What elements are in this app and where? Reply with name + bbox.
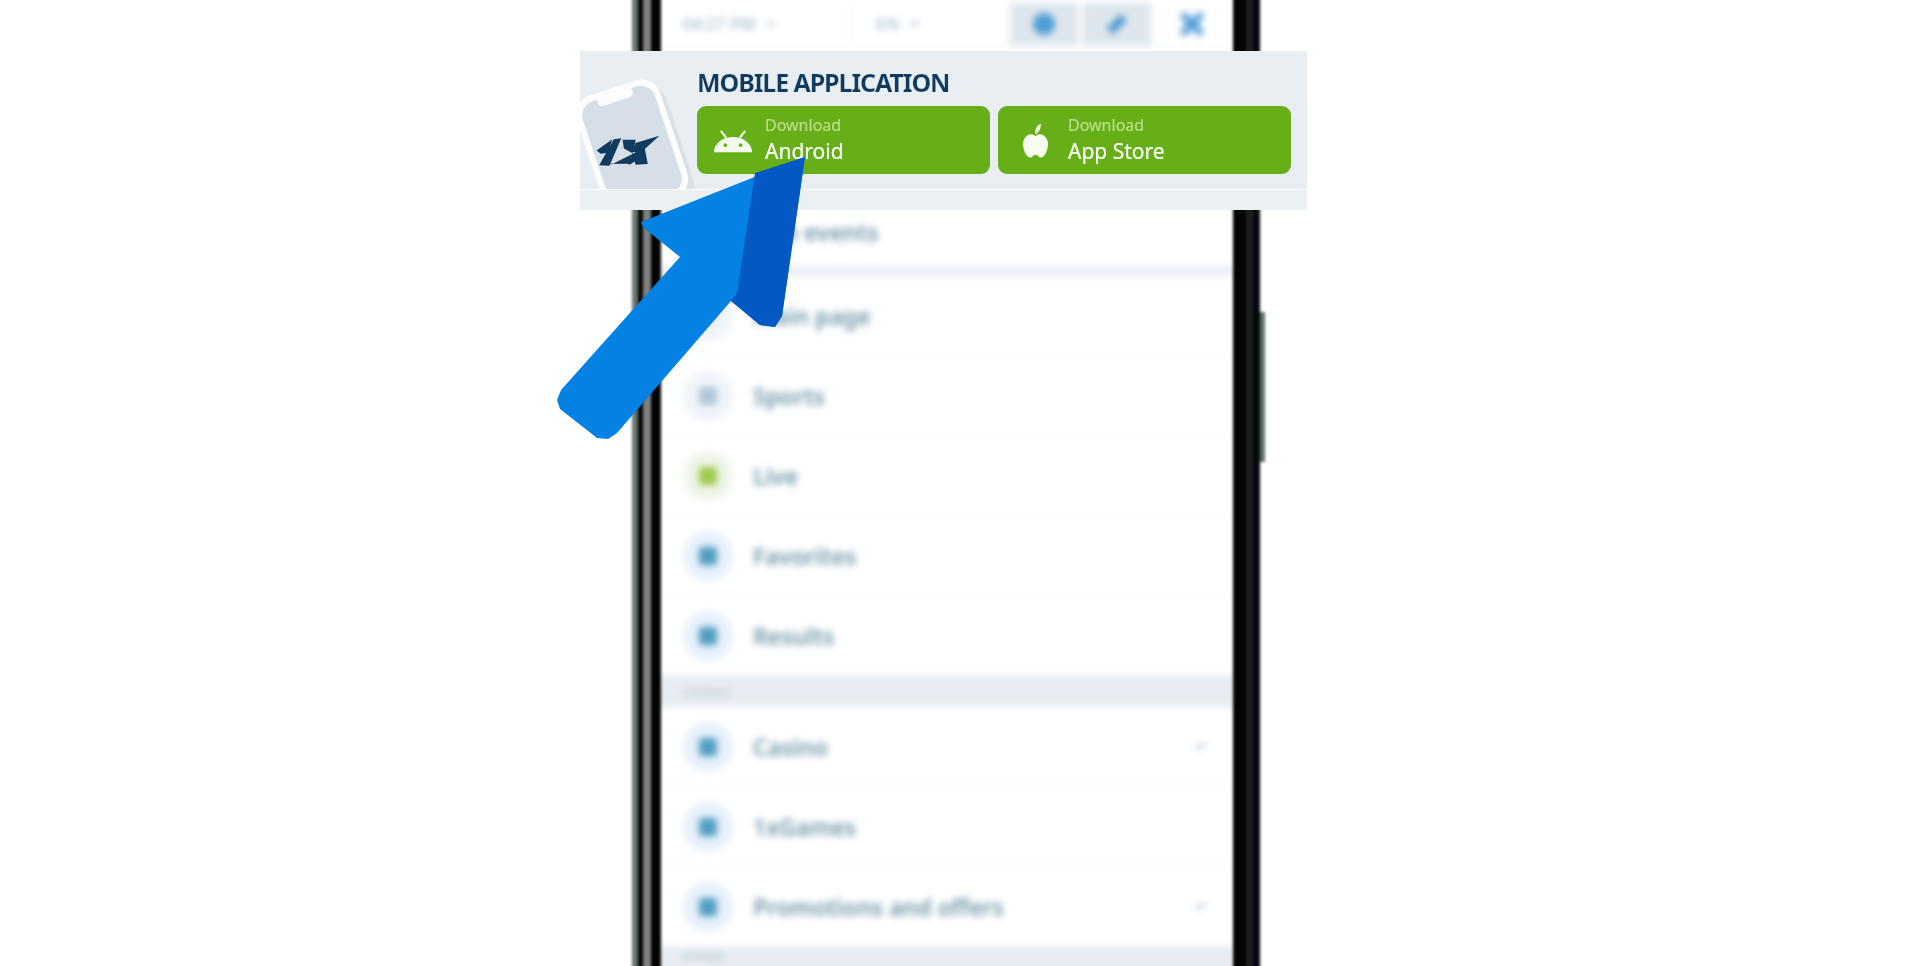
staticText: App Store <box>1068 137 1165 166</box>
button[interactable]: Notifications <box>1010 3 1078 45</box>
button[interactable]: Close <box>1176 8 1208 40</box>
staticText: 1xGames <box>753 811 857 842</box>
staticText: Live events <box>753 216 879 247</box>
staticText: Android <box>765 137 844 166</box>
staticText: Results <box>753 620 835 651</box>
button[interactable]: Download <box>697 106 990 174</box>
staticText: EN <box>876 12 899 35</box>
button[interactable]: Promotions and offers <box>656 867 1236 946</box>
button[interactable]: Live events <box>656 196 1236 266</box>
staticText: Promotions and offers <box>753 891 1004 922</box>
button[interactable]: Download <box>998 106 1291 174</box>
staticText: OTHER <box>683 949 725 965</box>
staticText: MOBILE APPLICATION <box>697 65 950 99</box>
staticText: Download <box>765 114 842 136</box>
staticText: 04:27 PM <box>682 12 756 35</box>
button[interactable]: Main page <box>656 276 1236 355</box>
button[interactable]: Results <box>656 596 1236 675</box>
button[interactable]: Sports <box>656 356 1236 435</box>
button[interactable]: Favorites <box>656 516 1236 595</box>
staticText: Download <box>1068 114 1145 136</box>
button[interactable]: Casino <box>656 707 1236 786</box>
staticText: CASINO <box>683 684 732 700</box>
staticText: Main page <box>753 300 871 331</box>
staticText: Favorites <box>753 540 857 571</box>
button[interactable]: Live <box>656 436 1236 515</box>
staticText: Live <box>753 460 799 491</box>
staticText: Casino <box>753 731 828 762</box>
button[interactable]: Messages <box>1083 3 1151 45</box>
button[interactable]: 1xGames <box>656 787 1236 866</box>
staticText: Sports <box>753 380 825 411</box>
